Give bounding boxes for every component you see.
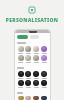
button[interactable]: Watch face [32,80,40,88]
button[interactable]: Watch face [32,96,40,100]
button[interactable]: Watch face [40,46,48,54]
button[interactable] [30,35,39,39]
button[interactable]: Watch face [32,55,40,63]
button[interactable]: Watch face [24,46,32,54]
button[interactable]: Watch face [32,71,40,79]
staticText: PERSONALISATION [0,17,64,24]
button[interactable] [17,35,28,39]
button[interactable]: Watch face [40,71,48,79]
button[interactable]: Watch face [17,71,24,79]
button[interactable]: Watch face [24,80,32,88]
other: Personalisation icon [28,6,36,14]
button[interactable]: Watch face [32,46,40,54]
button[interactable]: Watch face [17,55,24,63]
button[interactable]: Watch face [24,55,32,63]
button[interactable]: Watch face [17,46,24,54]
button[interactable]: Watch face [17,80,24,88]
button[interactable]: Watch face [40,80,48,88]
button[interactable]: Watch face [17,96,24,100]
button[interactable]: Watch face [40,96,48,100]
button[interactable]: Watch face [24,71,32,79]
button[interactable]: Watch face [24,96,32,100]
button[interactable]: Watch face [40,55,48,63]
